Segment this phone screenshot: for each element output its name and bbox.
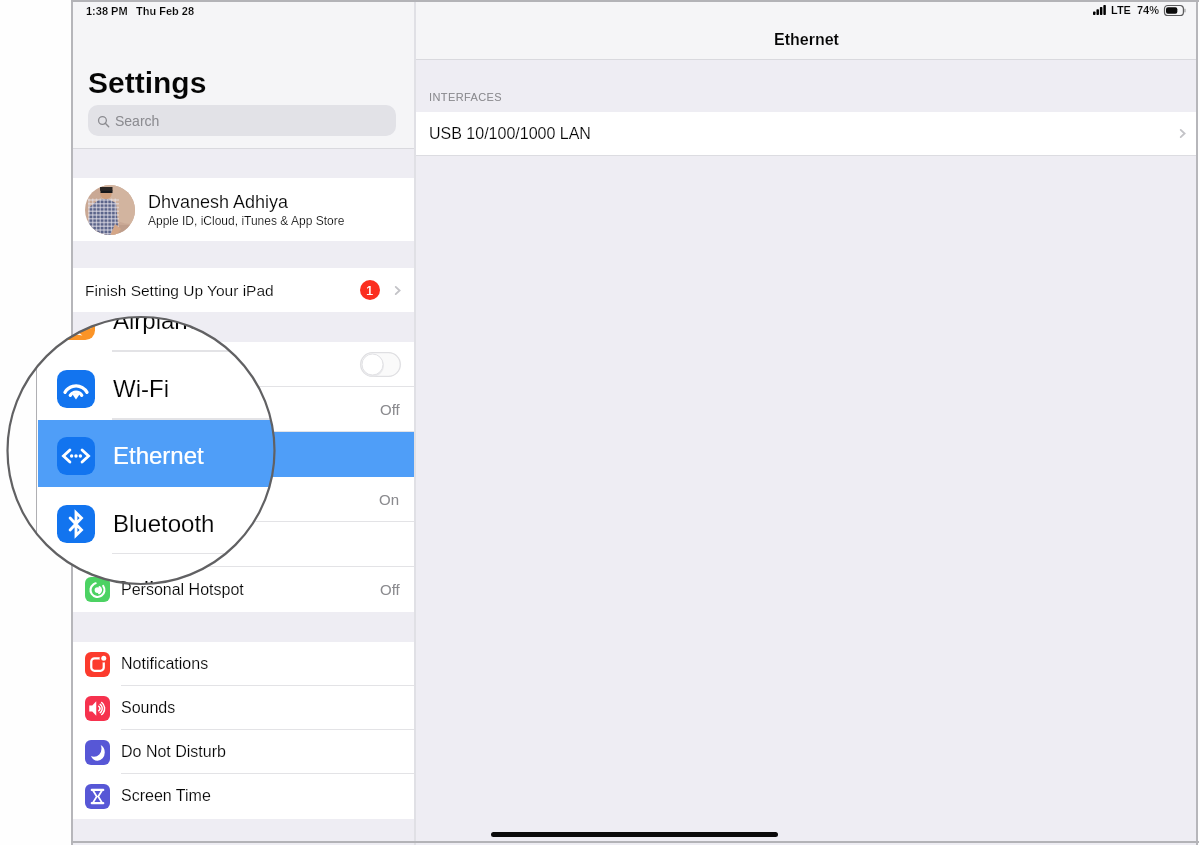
staticText: Off [380, 581, 400, 598]
staticText: 1:38 PM [86, 5, 128, 17]
staticText: LTE [1111, 4, 1131, 16]
staticText: Notifications [121, 655, 209, 673]
staticText: Airplane Mode [113, 307, 268, 334]
staticText: Personal Hotspot [113, 643, 298, 670]
staticText: Apple ID, iCloud, iTunes & App Store [148, 214, 345, 227]
staticText: Off [380, 401, 400, 418]
staticText: Bluetooth [113, 510, 215, 537]
button[interactable]: Airplane Mode [72, 342, 414, 387]
button[interactable]: Notifications [72, 642, 414, 686]
button[interactable]: Personal Hotspot [72, 567, 414, 612]
button[interactable]: Screen Time [72, 774, 414, 818]
button[interactable]: Wi-Fi [72, 387, 414, 432]
button[interactable]: Finish Setting Up Your iPad [72, 268, 414, 312]
staticText: Personal Hotspot [121, 581, 244, 599]
staticText: 1 [366, 283, 374, 298]
button[interactable]: Do Not Disturb [72, 730, 414, 774]
staticText: 74% [1137, 4, 1160, 16]
button[interactable]: Cellular Data [72, 522, 414, 567]
staticText: Ethernet [113, 442, 204, 469]
staticText: Wi-Fi [121, 401, 159, 419]
button[interactable]: Dhvanesh Adhiya [72, 178, 414, 241]
staticText: Finish Setting Up Your iPad [85, 282, 274, 299]
staticText: Cellular Data [121, 536, 214, 554]
staticText: Sounds [121, 699, 176, 717]
staticText: Search [115, 113, 160, 129]
staticText: Settings [88, 66, 207, 100]
button[interactable]: Sounds [72, 686, 414, 730]
staticText: Wi-Fi [113, 375, 169, 402]
button[interactable]: Search [88, 105, 396, 136]
staticText: USB 10/100/1000 LAN [429, 125, 591, 143]
staticText: Thu Feb 28 [136, 5, 195, 17]
staticText: Screen Time [121, 787, 211, 805]
staticText: Do Not Disturb [121, 743, 226, 761]
staticText: Ethernet [774, 31, 839, 49]
staticText: Ethernet [121, 446, 182, 464]
button[interactable]: Bluetooth [72, 477, 414, 522]
button[interactable]: Ethernet [72, 432, 414, 477]
staticText: On [379, 491, 400, 508]
staticText: Cellular Data [113, 576, 252, 603]
staticText: INTERFACES [429, 91, 503, 103]
button[interactable]: USB 10/100/1000 LAN [416, 112, 1196, 155]
staticText: Dhvanesh Adhiya [148, 192, 289, 212]
